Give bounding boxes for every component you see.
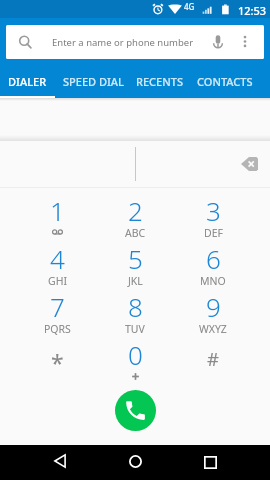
staticText: DEF [204, 226, 223, 240]
staticText: 3 [206, 193, 221, 228]
staticText: 2 [128, 193, 143, 228]
button[interactable]: 3 [174, 188, 252, 236]
button[interactable]: 4 [18, 236, 96, 284]
staticText: 4G [184, 1, 195, 12]
button[interactable]: DIALER [0, 59, 55, 98]
staticText: 0 [128, 337, 143, 372]
staticText: 9 [206, 289, 221, 324]
button[interactable]: 7 [18, 284, 96, 332]
button[interactable]: Call [115, 390, 156, 431]
staticText: DIALER [8, 74, 47, 89]
button[interactable]: 2 [96, 188, 174, 236]
button[interactable]: 8 [96, 284, 174, 332]
staticText: JKL [128, 274, 143, 288]
staticText: 1 [50, 193, 65, 228]
button[interactable]: 1 [18, 188, 96, 236]
staticText: 7 [50, 289, 65, 324]
staticText: 8 [128, 289, 143, 324]
button[interactable]: Enter a name or phone number [6, 25, 264, 59]
button[interactable]: Back [46, 447, 74, 475]
staticText: ABC [125, 226, 146, 240]
staticText: MNO [200, 274, 226, 288]
button[interactable]: Backspace [236, 151, 262, 177]
button[interactable]: 6 [174, 236, 252, 284]
staticText: 5 [128, 241, 143, 276]
button[interactable]: 9 [174, 284, 252, 332]
staticText: WXYZ [199, 322, 227, 336]
staticText: Enter a name or phone number [52, 36, 194, 49]
button[interactable]: Recents [196, 448, 224, 476]
staticText: 12:53 [238, 3, 267, 18]
staticText: CONTACTS [197, 74, 253, 89]
staticText: * [51, 347, 64, 378]
staticText: RECENTS [136, 74, 183, 89]
button[interactable]: SPEED DIAL [58, 59, 129, 98]
button[interactable]: # [174, 332, 252, 380]
button[interactable]: Voice search [208, 32, 228, 52]
button[interactable]: * [18, 332, 96, 380]
button[interactable]: 0 [96, 332, 174, 380]
button[interactable]: 5 [96, 236, 174, 284]
staticText: 4 [50, 241, 65, 276]
staticText: 6 [206, 241, 221, 276]
button[interactable]: More options [235, 32, 255, 52]
button[interactable]: Home [121, 447, 149, 475]
staticText: SPEED DIAL [63, 74, 124, 89]
staticText: GHI [48, 274, 67, 288]
staticText: PQRS [44, 322, 71, 336]
button[interactable]: CONTACTS [191, 59, 259, 98]
staticText: TUV [125, 322, 145, 336]
button[interactable]: RECENTS [126, 59, 192, 98]
staticText: # [207, 346, 219, 371]
